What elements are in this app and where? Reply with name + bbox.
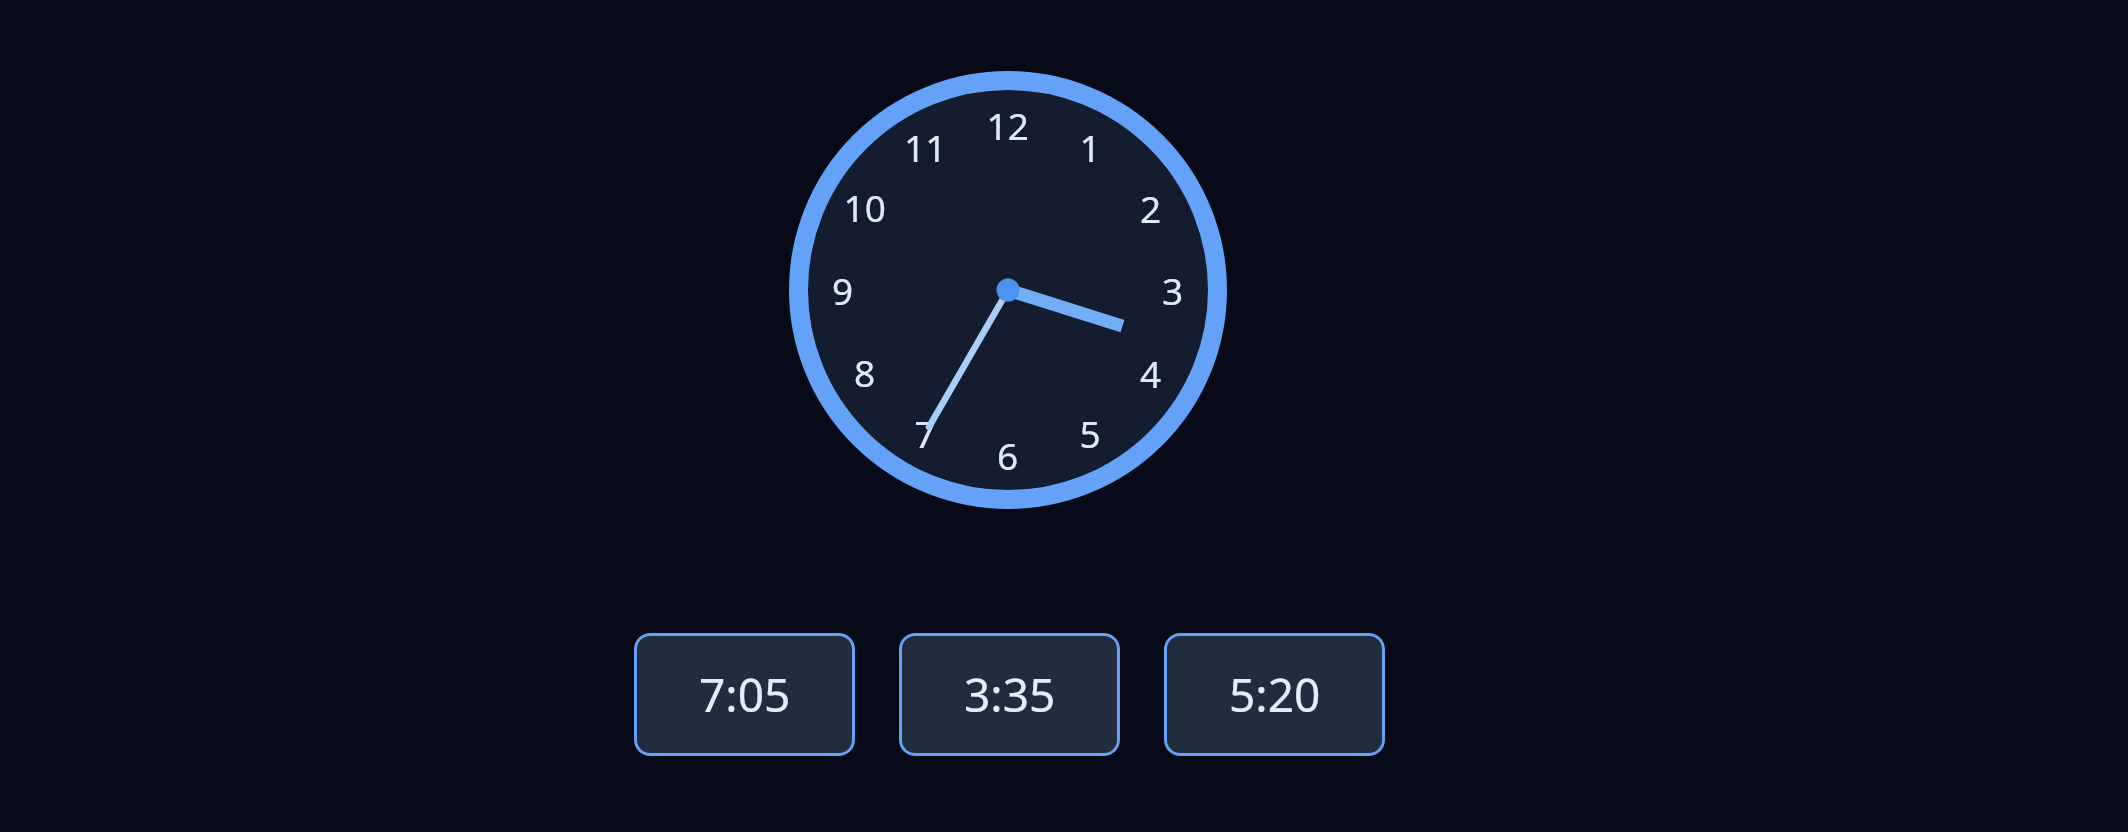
button[interactable]: 3:35	[899, 633, 1120, 756]
button[interactable]: 7:05	[634, 633, 855, 756]
button[interactable]: 5:20	[1164, 633, 1385, 756]
staticText: 3:35	[964, 663, 1056, 726]
other: Analog clock showing 3:35	[789, 71, 1227, 509]
staticText: 7:05	[699, 663, 791, 726]
staticText: 5:20	[1229, 663, 1321, 726]
